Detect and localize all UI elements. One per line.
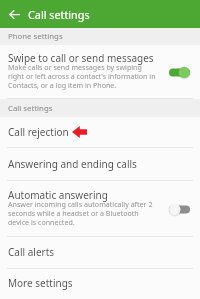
button[interactable]: Swipe to call or send messages — [0, 45, 200, 99]
button[interactable]: Call alerts — [0, 237, 200, 269]
button[interactable]: More settings — [0, 269, 200, 299]
button[interactable]: Turn on Automatic answering — [169, 199, 190, 219]
button[interactable]: Call rejection — [0, 117, 200, 148]
button[interactable]: Navigate up — [0, 0, 28, 28]
staticText: Call rejection — [8, 125, 69, 139]
staticText: Answer incoming calls automatically afte… — [8, 200, 156, 227]
staticText: Answering and ending calls — [8, 157, 137, 171]
staticText: Automatic answering — [8, 188, 108, 202]
staticText: Call settings — [28, 7, 90, 22]
staticText: Call alerts — [8, 245, 55, 259]
staticText: More settings — [8, 276, 73, 290]
staticText: Make calls or send messages by swiping r… — [8, 63, 156, 90]
staticText: Call settings — [8, 103, 53, 114]
button[interactable]: Answering and ending calls — [0, 148, 200, 181]
staticText: Phone settings — [8, 31, 63, 42]
button[interactable]: Turn off Swipe to call or send messages — [169, 62, 190, 82]
button[interactable]: Automatic answering — [0, 181, 200, 237]
staticText: Swipe to call or send messages — [8, 51, 154, 65]
